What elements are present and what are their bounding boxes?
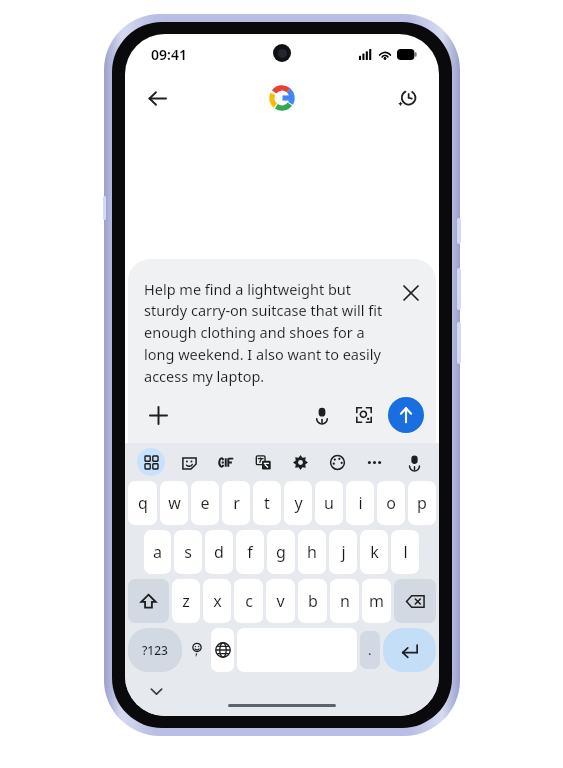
- button[interactable]: Google Lens: [348, 399, 380, 431]
- button[interactable]: b: [298, 579, 327, 623]
- button[interactable]: s: [174, 530, 202, 574]
- staticText: u: [324, 492, 334, 514]
- button[interactable]: GIF: [213, 449, 239, 475]
- button[interactable]: k: [360, 530, 388, 574]
- button[interactable]: Settings: [287, 449, 313, 475]
- button[interactable]: Backspace: [394, 579, 436, 623]
- button[interactable]: Shift: [128, 579, 169, 623]
- button[interactable]: Voice typing: [401, 449, 427, 475]
- button[interactable]: Change language: [211, 628, 234, 672]
- staticText: f: [247, 541, 253, 563]
- button[interactable]: e: [191, 481, 219, 525]
- staticText: e: [200, 492, 210, 514]
- button[interactable]: m: [362, 579, 391, 623]
- staticText: c: [245, 590, 253, 612]
- staticText: n: [340, 590, 350, 612]
- staticText: z: [182, 590, 190, 612]
- staticText: .: [368, 641, 372, 659]
- button[interactable]: Close: [398, 280, 424, 306]
- staticText: h: [307, 541, 317, 563]
- button[interactable]: o: [377, 481, 405, 525]
- button[interactable]: v: [266, 579, 295, 623]
- staticText: i: [358, 492, 363, 514]
- button[interactable]: Stickers: [176, 449, 202, 475]
- staticText: m: [369, 590, 384, 612]
- button[interactable]: n: [330, 579, 359, 623]
- staticText: y: [294, 492, 303, 514]
- button[interactable]: y: [284, 481, 312, 525]
- button[interactable]: Hide keyboard: [143, 678, 169, 704]
- staticText: t: [264, 492, 270, 514]
- staticText: l: [403, 541, 408, 563]
- button[interactable]: g: [267, 530, 295, 574]
- staticText: j: [341, 541, 346, 563]
- staticText: d: [214, 541, 224, 563]
- button[interactable]: f: [236, 530, 264, 574]
- button[interactable]: q: [128, 481, 157, 525]
- button[interactable]: j: [329, 530, 357, 574]
- button[interactable]: Back: [139, 80, 175, 116]
- button[interactable]: Enter: [383, 628, 436, 672]
- button[interactable]: More: [361, 449, 387, 475]
- button[interactable]: u: [315, 481, 343, 525]
- staticText: q: [138, 492, 148, 514]
- button[interactable]: Toolbox: [137, 448, 165, 476]
- button[interactable]: a: [144, 530, 171, 574]
- button[interactable]: x: [203, 579, 231, 623]
- button[interactable]: Send: [388, 397, 424, 433]
- staticText: p: [417, 492, 427, 514]
- staticText: r: [233, 492, 240, 514]
- button[interactable]: p: [408, 481, 436, 525]
- button[interactable]: h: [298, 530, 326, 574]
- staticText: v: [276, 590, 285, 612]
- staticText: 09:41: [151, 45, 187, 64]
- staticText: b: [308, 590, 318, 612]
- button[interactable]: Voice input: [306, 399, 338, 431]
- button[interactable]: r: [222, 481, 250, 525]
- button[interactable]: z: [172, 579, 200, 623]
- button[interactable]: ?123: [128, 628, 182, 672]
- button[interactable]: l: [391, 530, 419, 574]
- button[interactable]: Add: [142, 399, 174, 431]
- button[interactable]: Emoji and comma: [185, 628, 208, 672]
- button[interactable]: .: [360, 631, 380, 669]
- button[interactable]: t: [253, 481, 281, 525]
- button[interactable]: History: [389, 80, 425, 116]
- staticText: Help me find a lightweight but sturdy ca…: [144, 279, 390, 387]
- staticText: s: [184, 541, 192, 563]
- button[interactable]: d: [205, 530, 233, 574]
- button[interactable]: Themes: [324, 449, 350, 475]
- staticText: a: [153, 541, 162, 563]
- button[interactable]: i: [346, 481, 374, 525]
- button[interactable]: w: [160, 481, 188, 525]
- button[interactable]: c: [234, 579, 263, 623]
- staticText: ?123: [142, 642, 168, 658]
- button[interactable]: Translate: [250, 449, 276, 475]
- staticText: k: [370, 541, 379, 563]
- staticText: x: [213, 590, 222, 612]
- staticText: g: [276, 541, 286, 563]
- staticText: w: [168, 492, 181, 514]
- staticText: o: [386, 492, 396, 514]
